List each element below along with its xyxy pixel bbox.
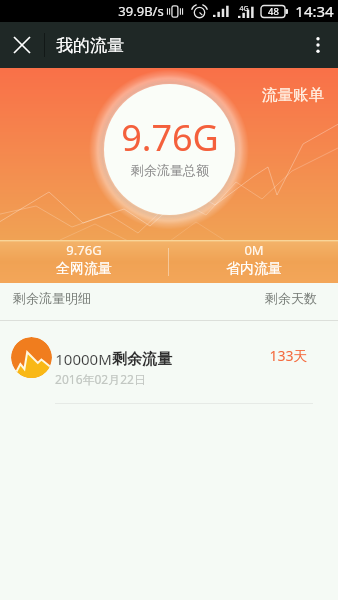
staticText: 省内流量 xyxy=(226,260,282,278)
staticText: 2016年02月22日 xyxy=(55,371,146,387)
staticText: 10000M xyxy=(55,349,112,369)
staticText: 0M xyxy=(244,241,264,259)
staticText: 剩余天数 xyxy=(265,290,317,306)
staticText: 4G xyxy=(239,4,249,14)
staticText: 剩余流量明细 xyxy=(13,290,91,306)
staticText: 9.76G xyxy=(121,113,219,162)
button[interactable]: More options xyxy=(298,22,338,68)
staticText: 剩余流量总额 xyxy=(131,162,209,178)
staticText: 14:34 xyxy=(295,1,334,21)
staticText: 剩余流量 xyxy=(112,350,172,369)
staticText: 9.76G xyxy=(66,241,102,259)
button[interactable]: 9.76G xyxy=(0,240,168,283)
staticText: 39.9B/s xyxy=(118,2,164,20)
button[interactable]: 10000M xyxy=(0,321,338,404)
staticText: 全网流量 xyxy=(56,260,112,278)
staticText: 133天 xyxy=(269,346,308,365)
staticText: 48 xyxy=(268,5,279,18)
staticText: 我的流量 xyxy=(56,35,124,56)
button[interactable]: 流量账单 xyxy=(262,85,324,105)
button[interactable]: Close xyxy=(0,22,44,68)
button[interactable]: 0M xyxy=(169,240,338,283)
staticText: 流量账单 xyxy=(262,85,324,105)
